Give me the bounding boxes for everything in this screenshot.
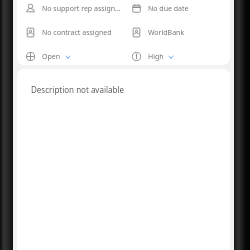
staticText: WorldBank bbox=[148, 28, 185, 38]
button[interactable]: Priority bbox=[131, 49, 227, 64]
staticText: No support rep assign… bbox=[42, 4, 121, 14]
staticText: High bbox=[148, 52, 164, 62]
button[interactable]: Contract bbox=[25, 25, 131, 40]
button[interactable]: Due date bbox=[131, 1, 227, 16]
staticText: Description not available bbox=[31, 84, 125, 95]
button[interactable]: Description not available bbox=[17, 69, 230, 250]
button[interactable]: Account bbox=[131, 25, 227, 40]
button[interactable]: Support rep bbox=[25, 1, 131, 16]
staticText: No contract assigned bbox=[42, 28, 112, 38]
staticText: Open bbox=[42, 52, 61, 62]
staticText: No due date bbox=[148, 4, 189, 14]
button[interactable]: Status bbox=[25, 49, 131, 64]
